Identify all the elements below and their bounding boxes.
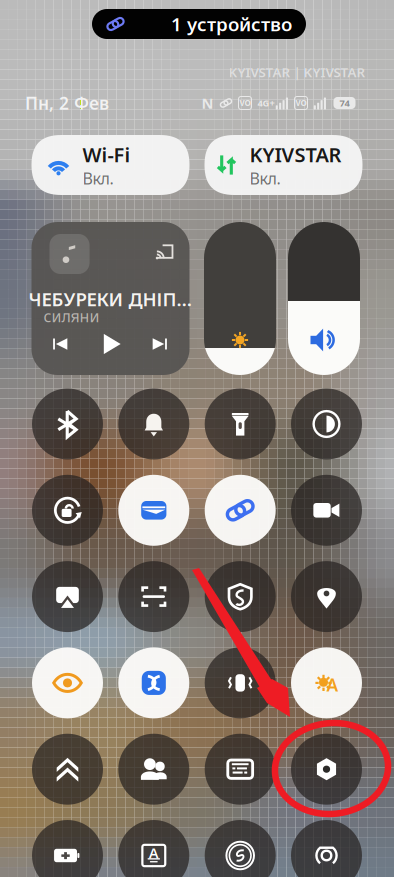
button[interactable]: 1 устройство bbox=[92, 9, 306, 39]
button[interactable]: Next track bbox=[145, 330, 173, 358]
button[interactable]: Smart view bbox=[205, 734, 276, 805]
staticText: 74 bbox=[339, 97, 349, 109]
button[interactable]: Wallet bbox=[118, 475, 189, 546]
button[interactable]: Shazam bbox=[205, 820, 276, 877]
staticText: 4G+ bbox=[257, 97, 274, 109]
button[interactable]: Volume bbox=[288, 222, 360, 375]
button[interactable]: Boost bbox=[32, 734, 103, 805]
button[interactable]: Previous track bbox=[46, 330, 74, 358]
button[interactable]: KYIVSTAR bbox=[204, 135, 362, 195]
staticText: VO bbox=[295, 98, 306, 108]
button[interactable]: Flashlight bbox=[205, 388, 276, 459]
button[interactable]: Scan QR code bbox=[118, 561, 189, 632]
button[interactable]: Eye comfort bbox=[32, 647, 103, 718]
staticText: N bbox=[201, 93, 213, 113]
staticText: KYIVSTAR | KYIVSTAR bbox=[228, 63, 365, 81]
staticText: A bbox=[326, 673, 338, 696]
button[interactable]: Ringtone bbox=[118, 388, 189, 459]
button[interactable]: Wi-Fi bbox=[31, 135, 189, 195]
button[interactable]: Dark mode bbox=[291, 388, 362, 459]
button[interactable]: Battery saver bbox=[32, 820, 103, 877]
button[interactable]: Play bbox=[95, 328, 127, 360]
button[interactable]: NFC bbox=[118, 647, 189, 718]
staticText: силяни bbox=[43, 305, 99, 327]
button[interactable]: Security bbox=[205, 561, 276, 632]
staticText: Wi-Fi bbox=[82, 141, 130, 168]
button[interactable]: Screen cast bbox=[32, 561, 103, 632]
button[interactable]: Font size bbox=[118, 820, 189, 877]
button[interactable]: Users bbox=[118, 734, 189, 805]
staticText: KYIVSTAR bbox=[249, 141, 341, 168]
button[interactable]: Auto brightness bbox=[291, 647, 362, 718]
button[interactable]: Vibration bbox=[205, 647, 276, 718]
button[interactable]: Settings bbox=[291, 734, 362, 805]
staticText: A bbox=[149, 843, 159, 863]
staticText: Вкл. bbox=[249, 168, 280, 189]
staticText: VO bbox=[239, 98, 250, 108]
button[interactable]: Nearby share bbox=[205, 475, 276, 546]
staticText: 1 устройство bbox=[171, 12, 292, 36]
button[interactable]: Brightness bbox=[204, 222, 276, 375]
staticText: Пн, 2 Фев bbox=[25, 91, 109, 114]
button[interactable]: Auto rotate bbox=[32, 475, 103, 546]
button[interactable]: Bluetooth bbox=[32, 388, 103, 459]
button[interactable]: Screen record bbox=[291, 475, 362, 546]
staticText: Вкл. bbox=[82, 168, 113, 189]
button[interactable]: Screen recorder bbox=[291, 820, 362, 877]
button[interactable]: Location bbox=[291, 561, 362, 632]
staticText: ЧЕБУРЕКИ ДНІП… bbox=[28, 287, 192, 311]
